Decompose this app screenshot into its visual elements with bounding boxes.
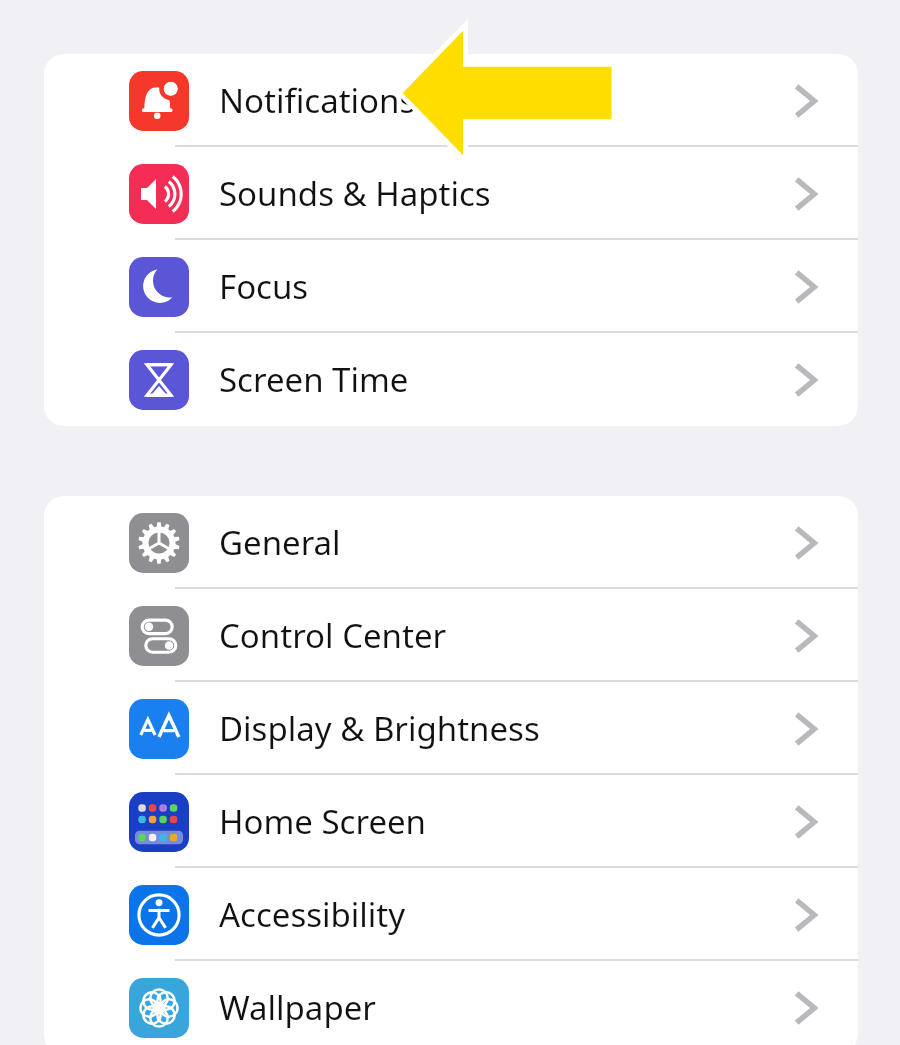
- button[interactable]: Accessibility: [44, 868, 858, 961]
- button[interactable]: Screen Time: [44, 333, 858, 426]
- staticText: Notifications: [219, 78, 416, 123]
- button[interactable]: Notifications: [44, 54, 858, 147]
- staticText: Focus: [219, 264, 309, 309]
- button[interactable]: Control Center: [44, 589, 858, 682]
- button[interactable]: Display & Brightness: [44, 682, 858, 775]
- staticText: Sounds & Haptics: [219, 171, 491, 216]
- staticText: Display & Brightness: [219, 706, 540, 751]
- button[interactable]: General: [44, 496, 858, 589]
- other: Pointer arrow: [390, 18, 622, 168]
- staticText: Wallpaper: [219, 985, 376, 1030]
- staticText: Accessibility: [219, 892, 406, 937]
- staticText: Control Center: [219, 613, 447, 658]
- staticText: Screen Time: [219, 357, 409, 402]
- button[interactable]: Focus: [44, 240, 858, 333]
- button[interactable]: Home Screen: [44, 775, 858, 868]
- staticText: Home Screen: [219, 799, 427, 844]
- staticText: General: [219, 520, 341, 565]
- button[interactable]: Sounds & Haptics: [44, 147, 858, 240]
- button[interactable]: Wallpaper: [44, 961, 858, 1045]
